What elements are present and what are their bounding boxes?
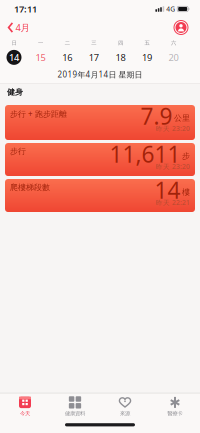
- staticText: 五: [144, 40, 149, 46]
- button[interactable]: 19: [139, 50, 154, 65]
- button[interactable]: 醫療卡: [150, 396, 200, 416]
- button[interactable]: 來源: [100, 396, 150, 416]
- staticText: 樓: [182, 187, 190, 197]
- staticText: 四: [118, 40, 123, 46]
- button[interactable]: 步行: [5, 143, 195, 176]
- button[interactable]: 18: [113, 50, 128, 65]
- button[interactable]: 17: [86, 50, 101, 65]
- staticText: 16: [62, 51, 72, 64]
- button[interactable]: 14: [6, 50, 21, 65]
- button[interactable]: 15: [33, 50, 48, 65]
- staticText: 健身: [7, 87, 23, 97]
- staticText: 14: [9, 51, 19, 64]
- button[interactable]: 爬樓梯段數: [5, 179, 195, 212]
- button[interactable]: 步行 + 跑步距離: [5, 105, 195, 140]
- staticText: 爬樓梯段數: [10, 182, 50, 192]
- staticText: 11,611: [109, 139, 180, 169]
- staticText: 15: [36, 51, 46, 64]
- button[interactable]: 個人檔案: [174, 20, 200, 34]
- staticText: 步行 + 跑步距離: [10, 108, 67, 119]
- button[interactable]: 今天: [0, 396, 50, 416]
- staticText: 二: [65, 40, 70, 46]
- staticText: 19: [142, 51, 152, 64]
- staticText: 7.9: [140, 101, 172, 131]
- staticText: 一: [38, 40, 43, 46]
- button[interactable]: 4月: [0, 21, 29, 34]
- button[interactable]: 健康資料: [50, 396, 100, 416]
- button[interactable]: 16: [60, 50, 75, 65]
- staticText: 20: [169, 51, 179, 64]
- staticText: 六: [171, 40, 176, 46]
- staticText: 18: [115, 51, 125, 64]
- staticText: 公里: [174, 113, 190, 123]
- staticText: 今天: [20, 410, 30, 417]
- staticText: 醫療卡: [167, 410, 182, 417]
- staticText: 健康資料: [65, 410, 85, 417]
- staticText: 步: [182, 151, 190, 161]
- button[interactable]: 20: [166, 50, 181, 65]
- staticText: 來源: [120, 410, 130, 417]
- staticText: 14: [154, 175, 180, 205]
- staticText: 17:11: [14, 3, 37, 15]
- staticText: 步行: [10, 146, 26, 156]
- staticText: 日: [11, 40, 16, 46]
- staticText: 2019年4月14日 星期日: [57, 69, 142, 80]
- staticText: 昨天 23:20: [156, 124, 190, 133]
- staticText: 4G: [166, 5, 175, 13]
- staticText: 4月: [15, 21, 29, 34]
- staticText: 昨天 23:20: [156, 162, 190, 171]
- staticText: 三: [91, 40, 96, 46]
- staticText: 17: [89, 51, 99, 64]
- staticText: 昨天 22:21: [156, 198, 190, 207]
